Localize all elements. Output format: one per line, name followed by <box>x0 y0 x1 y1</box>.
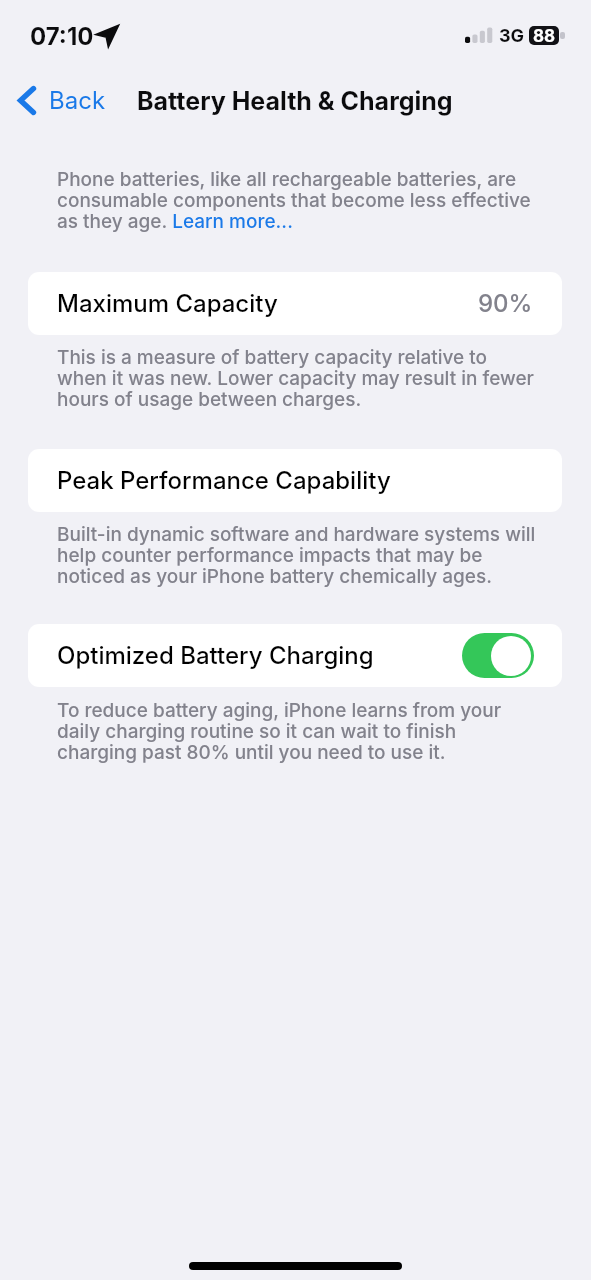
staticText: Maximum Capacity <box>57 289 278 318</box>
staticText: This is a measure of battery capacity re… <box>57 347 538 410</box>
staticText: 07:10 <box>30 22 94 51</box>
staticText: Built-in dynamic software and hardware s… <box>57 524 538 587</box>
staticText: To reduce battery aging, iPhone learns f… <box>57 700 538 763</box>
staticText: 90% <box>478 289 533 318</box>
button[interactable]: Peak Performance Capability <box>28 449 562 512</box>
staticText: Back <box>49 86 106 115</box>
staticText: Optimized Battery Charging <box>57 641 374 670</box>
staticText: Peak Performance Capability <box>57 466 391 495</box>
button[interactable]: Back <box>12 78 106 122</box>
staticText: 88 <box>533 26 556 45</box>
staticText: Battery Health & Charging <box>137 86 453 116</box>
button[interactable]: Optimized Battery Charging <box>28 624 562 687</box>
button[interactable]: Optimized Battery Charging <box>462 633 534 678</box>
staticText: Phone batteries, like all rechargeable b… <box>57 169 538 232</box>
staticText: 3G <box>499 25 525 47</box>
button[interactable]: Maximum Capacity <box>28 272 562 335</box>
